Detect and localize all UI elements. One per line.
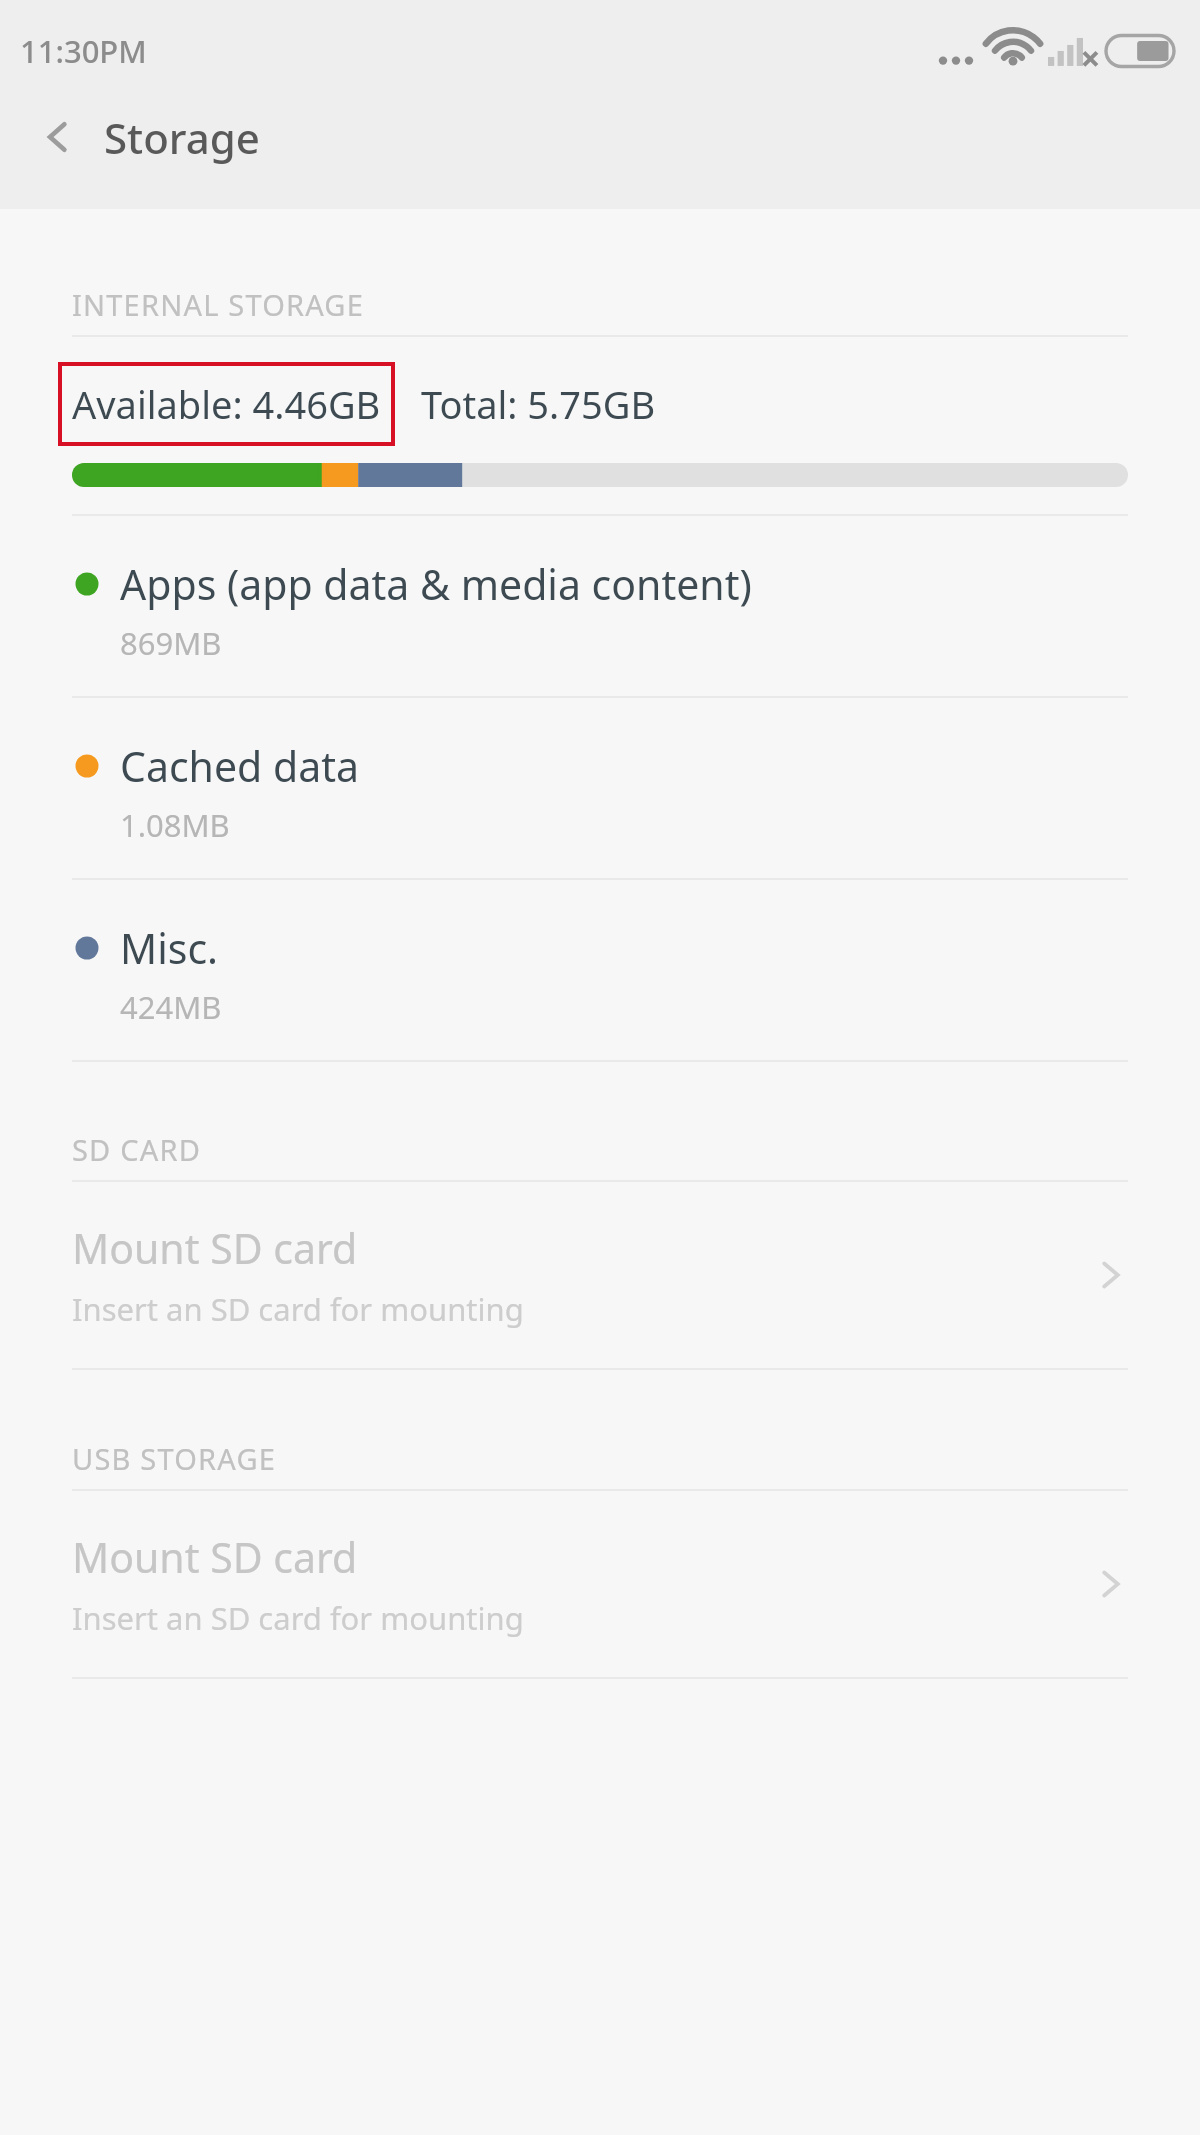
staticText: 424MB [120,986,222,1028]
staticText: Cached data [120,738,359,794]
staticText: Total: 5.75GB [421,378,656,430]
button[interactable]: Mount SD card [0,1491,1200,1677]
staticText: Mount SD card [72,1529,358,1585]
staticText: Misc. [120,920,219,976]
button[interactable]: Apps (app data & media content) [0,516,1200,696]
staticText: 869MB [120,622,222,664]
staticText: Insert an SD card for mounting [72,1288,524,1330]
staticText: Available: 4.46GB [72,378,381,430]
staticText: 11:30PM [20,30,147,72]
staticText: 1.08MB [120,804,230,846]
staticText: Apps (app data & media content) [120,556,752,612]
button[interactable]: Back [22,101,94,173]
button[interactable]: Mount SD card [0,1182,1200,1368]
staticText: INTERNAL STORAGE [72,285,365,324]
staticText: Insert an SD card for mounting [72,1597,524,1639]
staticText: Mount SD card [72,1220,358,1276]
staticText: Storage [104,109,260,166]
button[interactable]: Cached data [0,698,1200,878]
staticText: USB STORAGE [72,1439,277,1478]
staticText: SD CARD [72,1130,202,1169]
button[interactable]: Misc. [0,880,1200,1060]
